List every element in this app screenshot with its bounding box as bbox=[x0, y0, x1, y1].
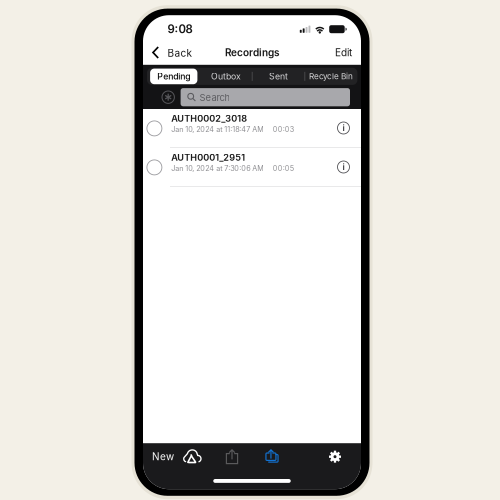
staticText: AUTH0002_3018 bbox=[171, 113, 247, 124]
staticText: 9:08 bbox=[167, 22, 192, 36]
staticText: Recordings bbox=[225, 46, 279, 59]
button[interactable]: Edit bbox=[325, 40, 361, 65]
button[interactable]: Recycle Bin bbox=[305, 68, 357, 85]
staticText: Recycle Bin bbox=[309, 71, 353, 81]
button[interactable]: Pending bbox=[150, 69, 197, 84]
button[interactable]: Share multiple bbox=[260, 444, 284, 470]
staticText: Pending bbox=[157, 71, 190, 82]
button[interactable]: Settings bbox=[323, 444, 347, 470]
button[interactable]: Outbox bbox=[200, 68, 252, 85]
staticText: New bbox=[152, 451, 174, 463]
staticText: 00:03 bbox=[273, 125, 294, 134]
staticText: Edit bbox=[335, 46, 352, 59]
button[interactable]: Share bbox=[220, 444, 244, 470]
staticText: Jan 10, 2024 at 7:30:06 AM bbox=[171, 164, 264, 173]
button[interactable]: AUTH0001_2951 bbox=[143, 148, 361, 187]
button[interactable]: Search bbox=[181, 88, 350, 106]
staticText: Search bbox=[199, 92, 230, 103]
staticText: Jan 10, 2024 at 11:18:47 AM bbox=[171, 125, 264, 134]
button[interactable]: Favorites bbox=[156, 88, 180, 106]
staticText: 00:05 bbox=[273, 164, 294, 173]
staticText: i bbox=[342, 123, 344, 133]
button[interactable]: AUTH0002_3018 bbox=[143, 109, 361, 148]
staticText: i bbox=[342, 162, 344, 172]
staticText: AUTH0001_2951 bbox=[171, 152, 245, 163]
button[interactable]: New bbox=[149, 444, 177, 470]
button[interactable]: Sent bbox=[252, 68, 305, 85]
staticText: Sent bbox=[269, 71, 288, 82]
button[interactable]: Back bbox=[143, 40, 197, 65]
staticText: Back bbox=[167, 47, 191, 59]
staticText: Outbox bbox=[211, 71, 241, 82]
button[interactable]: Upload to cloud bbox=[181, 444, 203, 470]
